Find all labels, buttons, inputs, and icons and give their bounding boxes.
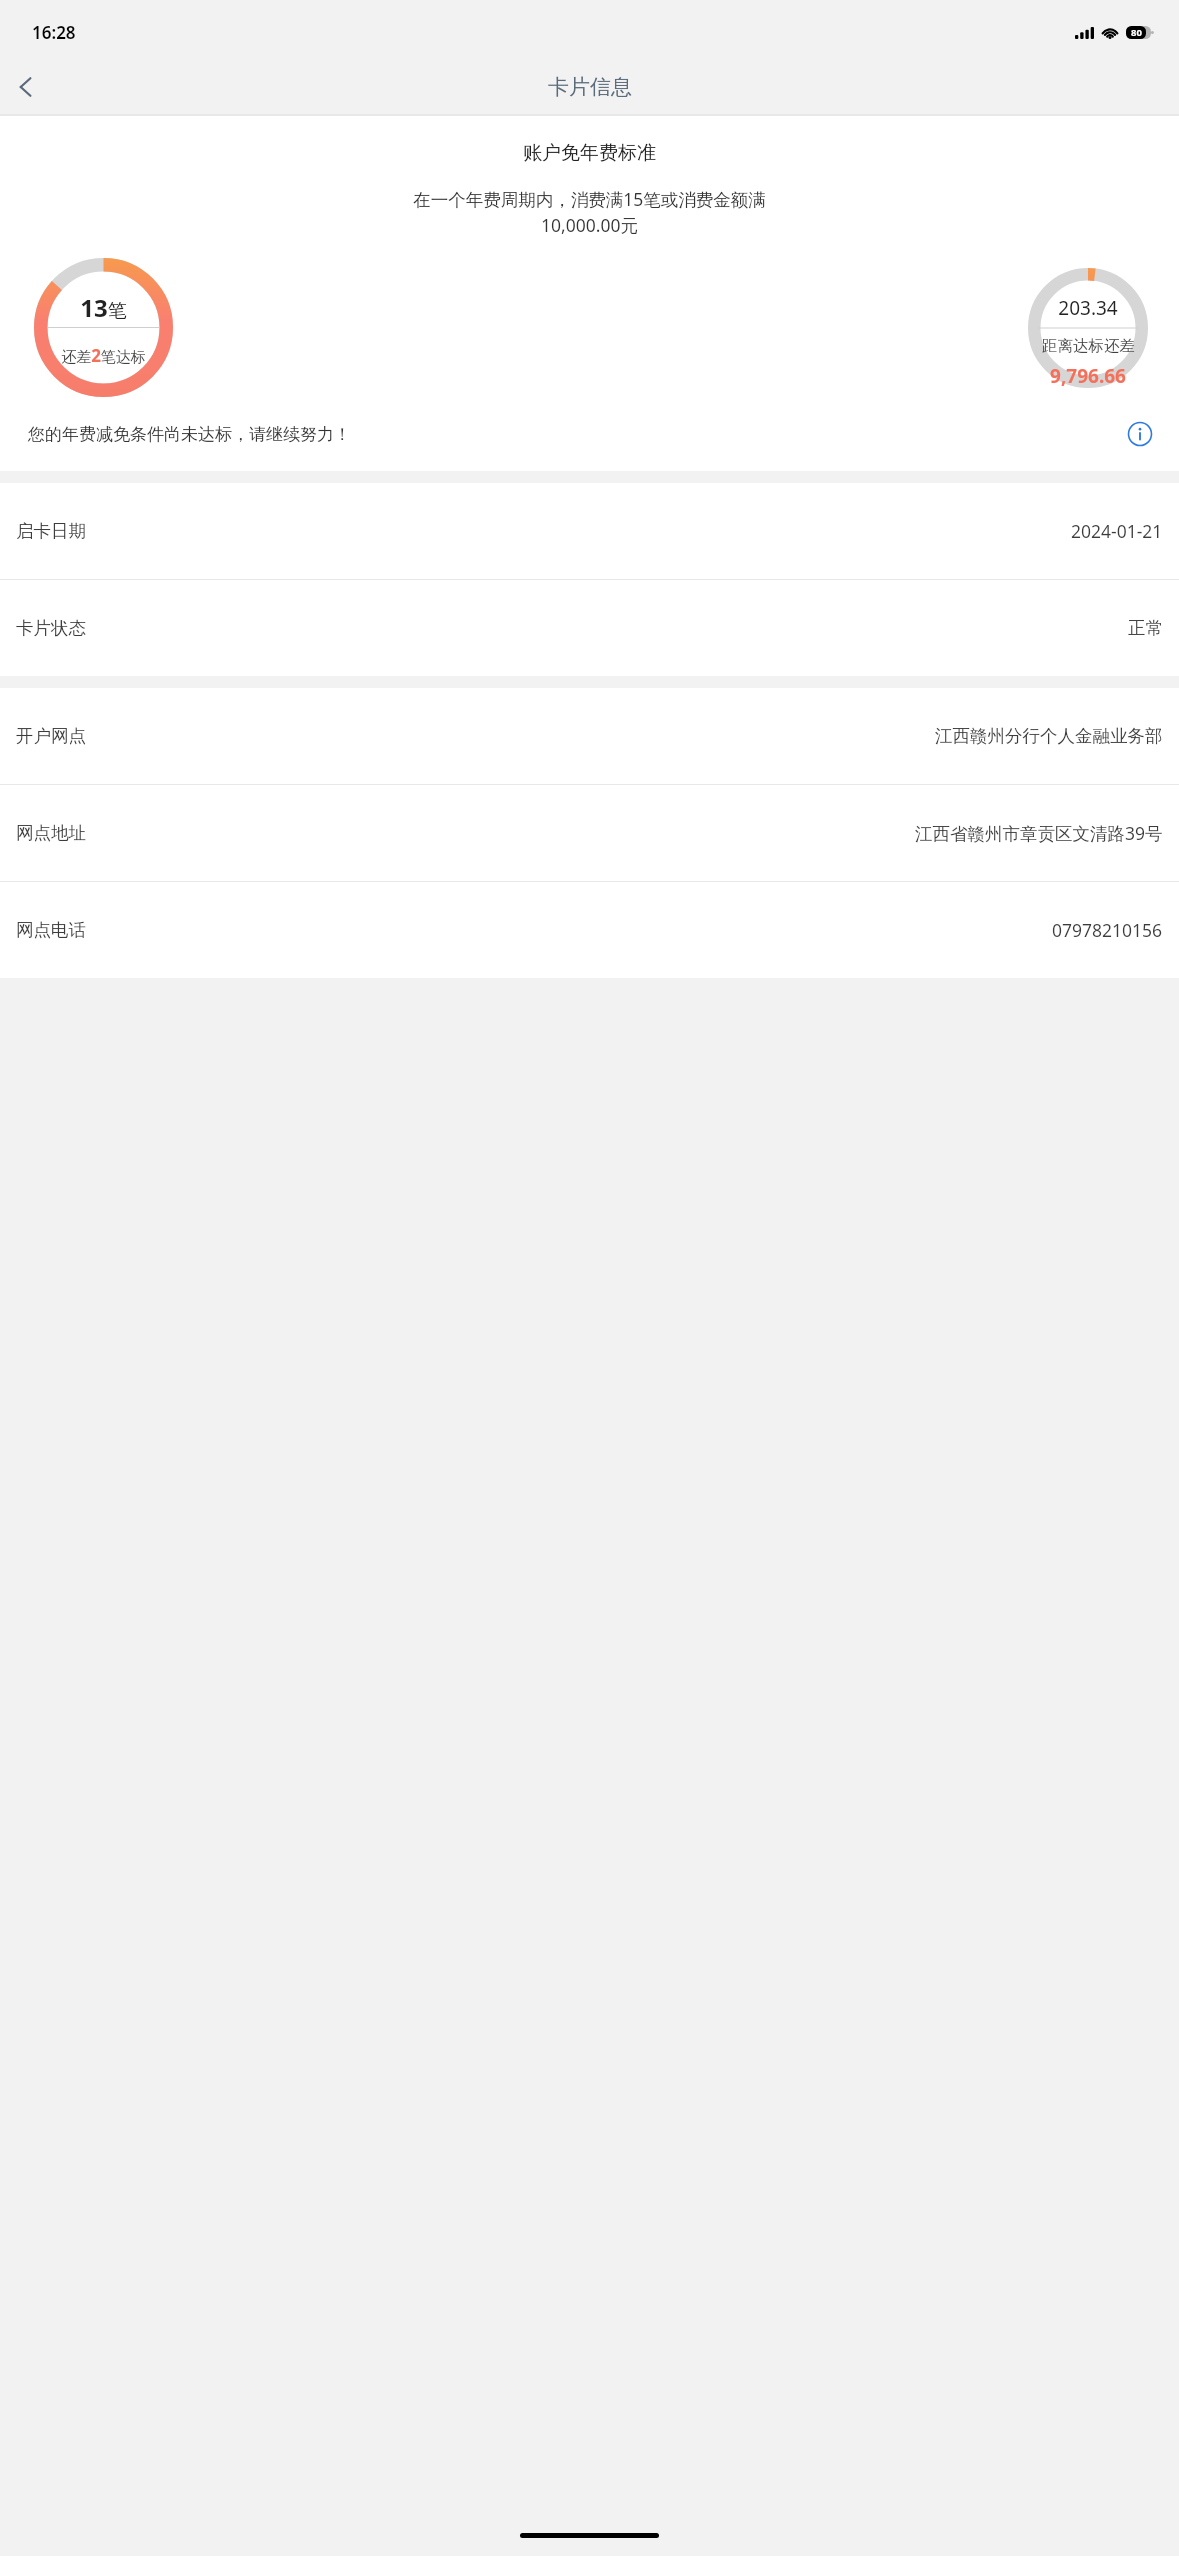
staticText: 江西省赣州市章贡区文清路39号: [915, 821, 1163, 845]
staticText: 账户免年费标准: [0, 141, 1179, 165]
staticText: 卡片状态: [16, 617, 86, 639]
staticText: 正常: [1128, 617, 1163, 639]
staticText: 网点电话: [16, 919, 86, 941]
staticText: 江西赣州分行个人金融业务部: [935, 725, 1163, 747]
staticText: 9,796.66: [1050, 363, 1126, 389]
staticText: 距离达标还差: [1042, 336, 1135, 356]
button[interactable]: 说明: [1125, 419, 1155, 449]
button[interactable]: 开户网点: [0, 688, 1179, 784]
staticText: 203.34: [1058, 295, 1118, 321]
staticText: 还差2笔达标: [61, 344, 146, 367]
staticText: 卡片信息: [548, 74, 632, 100]
button[interactable]: 卡片状态: [0, 580, 1179, 676]
button[interactable]: 网点电话: [0, 882, 1179, 978]
staticText: 13笔: [80, 291, 127, 324]
staticText: 网点地址: [16, 822, 86, 844]
staticText: 2024-01-21: [1071, 519, 1163, 543]
staticText: 开户网点: [16, 725, 86, 747]
button[interactable]: 返回: [0, 61, 52, 113]
staticText: 16:28: [32, 21, 76, 44]
button[interactable]: 启卡日期: [0, 483, 1179, 579]
button[interactable]: 网点地址: [0, 785, 1179, 881]
staticText: 您的年费减免条件尚未达标，请继续努力！: [28, 424, 351, 445]
staticText: 启卡日期: [16, 520, 86, 542]
staticText: 在一个年费周期内，消费满15笔或消费金额满 10,000.00元: [28, 187, 1151, 238]
staticText: 07978210156: [1052, 918, 1163, 942]
staticText: 80: [1131, 26, 1142, 39]
